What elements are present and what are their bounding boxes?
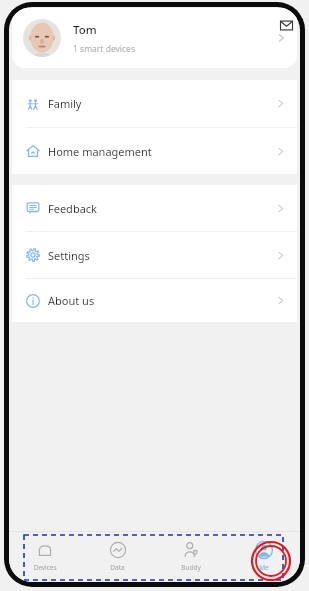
button[interactable]: Messages — [276, 15, 296, 35]
button[interactable]: Me — [227, 531, 300, 582]
staticText: Tom — [73, 22, 97, 38]
staticText: Feedback — [48, 201, 274, 216]
button[interactable]: About us — [12, 279, 297, 322]
staticText: 1 smart devices — [73, 43, 135, 55]
staticText: Family — [48, 96, 274, 111]
button[interactable]: Feedback — [12, 185, 297, 231]
staticText: Settings — [48, 248, 274, 263]
button[interactable]: Family — [12, 80, 297, 127]
staticText: About us — [48, 293, 274, 308]
staticText: Me — [259, 563, 269, 572]
staticText: Data — [110, 563, 125, 572]
button[interactable]: Data — [81, 531, 154, 582]
button[interactable]: Settings — [12, 232, 297, 278]
button[interactable]: Tom — [12, 8, 297, 68]
button[interactable]: Devices — [9, 531, 81, 582]
staticText: Home management — [48, 144, 274, 159]
button[interactable]: Home management — [12, 128, 297, 174]
staticText: Devices — [33, 563, 57, 572]
staticText: Buddy — [181, 563, 201, 572]
button[interactable]: Buddy — [154, 531, 227, 582]
